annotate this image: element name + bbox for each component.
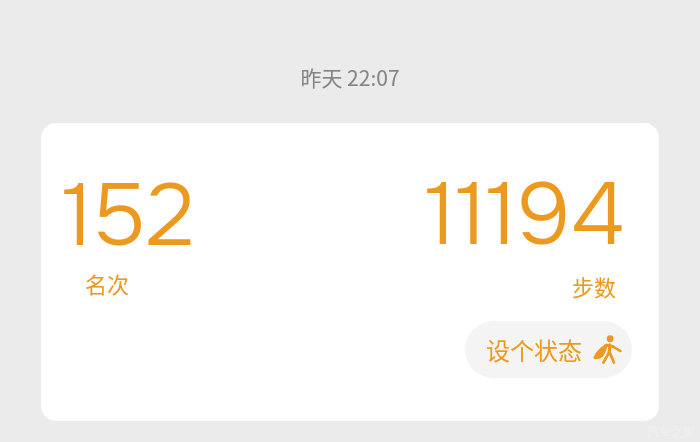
- button[interactable]: 设个状态: [465, 321, 632, 378]
- staticText: 步数: [572, 270, 617, 302]
- other: Set status: [592, 334, 622, 364]
- button[interactable]: 152: [41, 123, 659, 421]
- staticText: 设个状态: [486, 332, 582, 367]
- staticText: 名次: [85, 267, 130, 299]
- staticText: 11194: [425, 160, 625, 271]
- staticText: 昨天 22:07: [0, 62, 700, 92]
- staticText: 152: [62, 161, 195, 272]
